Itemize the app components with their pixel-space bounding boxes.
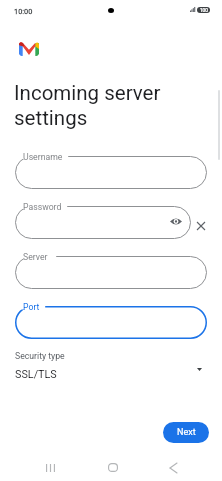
staticText: Username <box>23 152 63 162</box>
button[interactable]: Server <box>15 256 207 289</box>
staticText: Port <box>23 302 40 312</box>
staticText: 100 <box>200 8 208 13</box>
button[interactable]: Port <box>15 306 207 339</box>
staticText: 10:00 <box>14 7 33 16</box>
staticText: SSL/TLS <box>15 368 57 381</box>
staticText: Next <box>177 427 196 438</box>
button[interactable]: Username <box>15 156 207 189</box>
staticText: Security type <box>15 351 65 361</box>
staticText: Password <box>23 202 62 212</box>
button[interactable]: Security type <box>0 351 222 381</box>
button[interactable]: Recent apps <box>38 462 63 473</box>
button[interactable]: Back <box>161 462 186 473</box>
staticText: Server <box>23 252 48 262</box>
staticText: Incoming server settings <box>14 81 174 130</box>
button[interactable]: Password <box>15 206 191 239</box>
button[interactable]: Clear password <box>192 217 210 235</box>
button[interactable]: Next <box>163 422 209 443</box>
button[interactable]: Home <box>100 462 125 473</box>
